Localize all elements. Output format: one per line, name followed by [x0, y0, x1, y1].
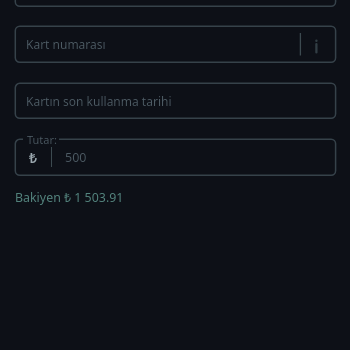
staticText: ₺: [29, 148, 38, 167]
button[interactable]: Kartın son kullanma tarihi: [15, 83, 336, 118]
button[interactable]: Kart numarası: [15, 26, 336, 62]
staticText: Tutar:: [27, 132, 57, 146]
button[interactable]: Card number information: [302, 26, 335, 62]
staticText: Kartın son kullanma tarihi: [26, 93, 172, 109]
button[interactable]: Tutar: [15, 139, 336, 175]
staticText: 500: [65, 149, 87, 166]
button[interactable]: Bakiyen ₺ 1 503.91: [15, 189, 124, 206]
staticText: Kart numarası: [26, 36, 106, 52]
